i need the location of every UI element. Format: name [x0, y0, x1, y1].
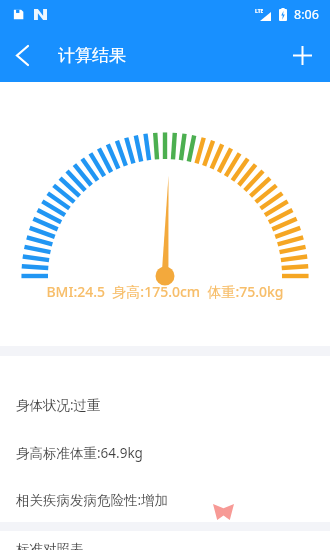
staticText: 相关疾病发病危险性:增加 — [16, 491, 169, 509]
staticText: 计算结果 — [58, 45, 126, 66]
staticText: LTE — [255, 8, 264, 15]
staticText: BMI:24.5 身高:175.0cm 体重:75.0kg — [46, 282, 284, 301]
staticText: 8:06 — [294, 6, 319, 23]
button[interactable]: Back — [0, 33, 44, 77]
button[interactable]: 相关疾病发病危险性:增加 — [0, 485, 330, 515]
staticText: 身体状况:过重 — [16, 396, 101, 414]
button[interactable]: 身体状况:过重 — [0, 390, 330, 420]
staticText: 标准对照表 — [16, 541, 84, 550]
staticText: 身高标准体重:64.9kg — [16, 444, 143, 462]
button[interactable]: 身高标准体重:64.9kg — [0, 438, 330, 468]
button[interactable]: Add — [282, 35, 322, 75]
